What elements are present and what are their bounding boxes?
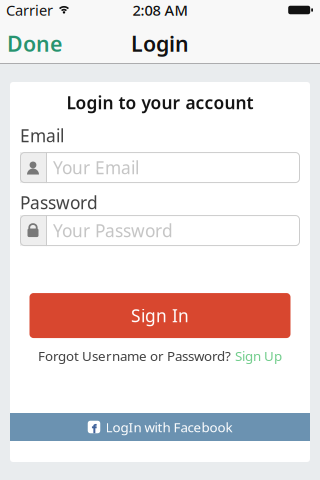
staticText: Email: [20, 124, 64, 147]
staticText: Sign Up: [235, 347, 282, 365]
staticText: LogIn with Facebook: [105, 418, 232, 436]
staticText: Your Password: [53, 219, 173, 242]
staticText: Login to your account: [66, 91, 253, 114]
staticText: 2:08 AM: [132, 0, 187, 20]
staticText: Carrier: [6, 0, 53, 20]
staticText: Forgot Username or Password?: [38, 347, 231, 365]
staticText: Sign In: [131, 304, 189, 327]
button[interactable]: LogIn with Facebook: [10, 413, 310, 441]
staticText: Done: [7, 29, 62, 58]
staticText: Password: [20, 191, 98, 214]
button[interactable]: Sign In: [29, 293, 290, 338]
button[interactable]: Done: [0, 21, 62, 66]
staticText: Your Email: [53, 156, 139, 179]
staticText: Login: [131, 29, 189, 58]
button[interactable]: Sign Up: [235, 347, 282, 365]
